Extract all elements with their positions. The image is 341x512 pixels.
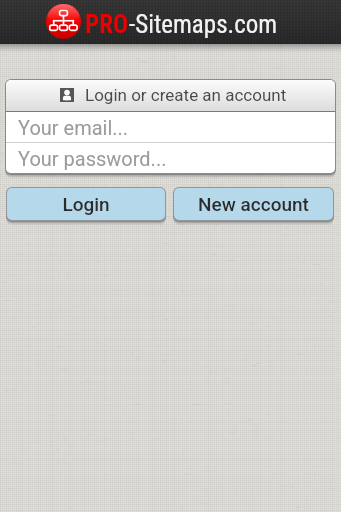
staticText: Login — [62, 193, 110, 215]
other: PRO-Sitemaps logo — [46, 4, 81, 39]
staticText: PRO — [85, 10, 129, 39]
staticText: Your password... — [18, 147, 167, 170]
staticText: Your email... — [18, 116, 129, 139]
staticText: -Sitemaps.com — [129, 10, 278, 39]
button[interactable]: Login — [7, 188, 165, 220]
staticText: Login or create an account — [85, 85, 287, 105]
button[interactable]: Login or create an account — [6, 80, 335, 111]
button[interactable]: Your password... — [6, 143, 335, 173]
staticText: New account — [198, 193, 309, 215]
button[interactable]: Your email... — [6, 112, 335, 142]
button[interactable]: New account — [174, 188, 333, 220]
